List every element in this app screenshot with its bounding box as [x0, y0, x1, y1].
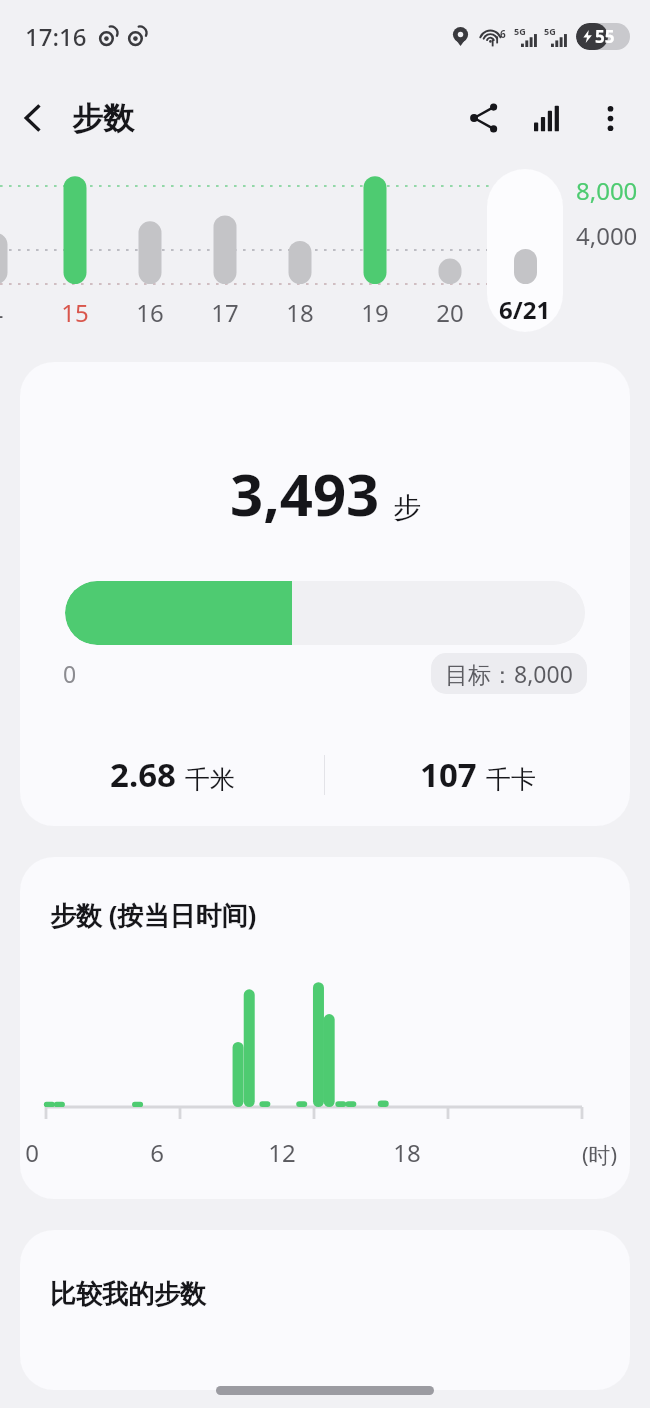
staticText: 0 — [20, 1136, 54, 1169]
button[interactable]: 步数 (按当日时间) — [20, 857, 630, 1199]
staticText: 2.68 — [110, 752, 176, 797]
staticText: 千米 — [185, 764, 235, 795]
staticText: 19 — [345, 296, 405, 329]
staticText: 目标：8,000 — [445, 658, 573, 689]
staticText: 0 — [63, 658, 77, 689]
staticText: 比较我的步数 — [50, 1278, 206, 1311]
button[interactable]: Back — [0, 85, 66, 151]
staticText: 5G — [514, 25, 526, 37]
staticText: 20 — [420, 296, 480, 329]
staticText: 17 — [195, 296, 255, 329]
staticText: (时) — [582, 1139, 618, 1169]
staticText: 18 — [385, 1136, 429, 1169]
button[interactable]: Statistics — [516, 86, 580, 150]
staticText: 18 — [270, 296, 330, 329]
staticText: 4 — [0, 296, 26, 329]
staticText: 步 — [393, 490, 421, 525]
staticText: 步数 — [72, 99, 134, 138]
staticText: 千卡 — [486, 764, 536, 795]
button[interactable]: 6/21 — [487, 169, 563, 332]
button[interactable]: More options — [580, 88, 640, 148]
staticText: 步数 (按当日时间) — [50, 897, 257, 933]
button[interactable]: Share — [452, 86, 516, 150]
staticText: 15 — [45, 296, 105, 329]
staticText: 17:16 — [25, 20, 87, 53]
staticText: 6 — [135, 1136, 179, 1169]
button[interactable]: 比较我的步数 — [20, 1230, 630, 1390]
button[interactable]: 3,493 — [20, 362, 630, 826]
staticText: 107 — [420, 752, 477, 797]
staticText: 8,000 — [576, 174, 638, 207]
staticText: 3,493 — [230, 454, 380, 533]
staticText: 12 — [260, 1136, 304, 1169]
staticText: 55 — [595, 25, 615, 48]
staticText: 4,000 — [576, 219, 638, 252]
staticText: 16 — [120, 296, 180, 329]
staticText: 6/21 — [499, 293, 551, 326]
staticText: 5G — [544, 25, 556, 37]
staticText: 6 — [500, 27, 506, 41]
